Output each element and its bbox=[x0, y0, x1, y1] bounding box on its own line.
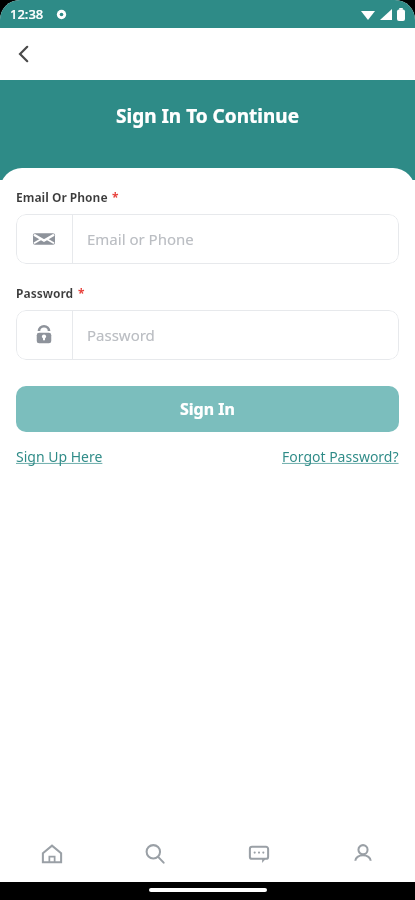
staticText: Sign In bbox=[180, 398, 235, 420]
button[interactable]: Sign Up Here bbox=[16, 447, 103, 466]
staticText: 12:38 bbox=[10, 5, 44, 23]
button[interactable]: Password bbox=[16, 310, 399, 360]
staticText: Forgot Password? bbox=[282, 447, 399, 466]
button[interactable]: Messages bbox=[207, 826, 311, 882]
staticText: Email or Phone bbox=[87, 229, 194, 249]
staticText: * bbox=[112, 189, 119, 205]
staticText: * bbox=[78, 285, 85, 301]
button[interactable]: Email or Phone bbox=[16, 214, 399, 264]
staticText: Password bbox=[16, 285, 74, 301]
button[interactable]: Profile bbox=[311, 826, 415, 882]
staticText: Password bbox=[87, 325, 155, 345]
staticText: Sign Up Here bbox=[16, 447, 103, 466]
button[interactable]: Search bbox=[103, 826, 207, 882]
button[interactable]: Home bbox=[0, 826, 103, 882]
button[interactable]: Sign In bbox=[16, 386, 399, 432]
staticText: Email Or Phone bbox=[16, 189, 108, 205]
button[interactable]: Back bbox=[0, 30, 48, 78]
staticText: Sign In To Continue bbox=[116, 103, 299, 129]
button[interactable]: Forgot Password? bbox=[282, 447, 399, 466]
